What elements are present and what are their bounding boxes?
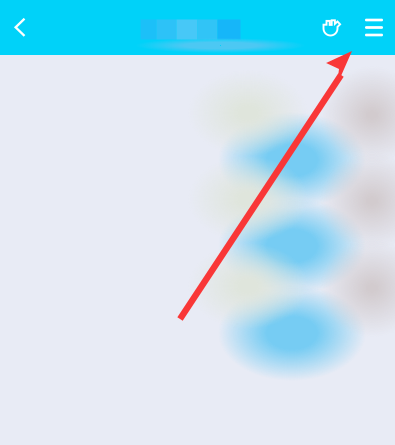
button[interactable]: Avatar [0,0,395,445]
button[interactable]: Gesture [311,0,353,55]
button[interactable]: Menu [353,0,395,55]
button[interactable]: Back [0,0,40,55]
button[interactable]: Avatar [0,0,395,445]
button[interactable]: Avatar [0,0,395,445]
